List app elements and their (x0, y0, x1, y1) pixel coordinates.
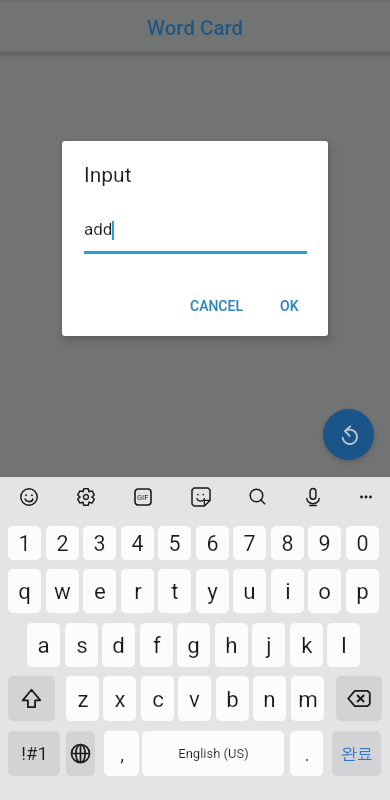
button[interactable]: x (103, 676, 136, 721)
staticText: v (189, 686, 200, 712)
button[interactable]: u (233, 569, 266, 613)
button[interactable]: t (158, 569, 191, 613)
staticText: n (263, 686, 276, 712)
staticText: !#1 (21, 743, 48, 765)
button[interactable]: 완료 (332, 731, 381, 776)
staticText: . (304, 743, 310, 765)
staticText: u (243, 578, 256, 604)
button[interactable]: v (178, 676, 211, 721)
button[interactable]: Emoji (9, 477, 49, 517)
button[interactable]: w (46, 569, 79, 613)
button[interactable]: . (290, 731, 323, 776)
staticText: p (356, 578, 369, 604)
button[interactable]: Shift (8, 676, 55, 721)
staticText: l (341, 632, 347, 658)
button[interactable]: English (US) (142, 731, 284, 776)
button[interactable]: 0 (346, 526, 379, 560)
staticText: z (77, 686, 89, 712)
button[interactable]: Reset (323, 409, 374, 460)
staticText: k (301, 632, 313, 658)
button[interactable]: s (65, 623, 98, 667)
staticText: i (285, 578, 291, 604)
staticText: w (54, 578, 71, 604)
staticText: CANCEL (190, 298, 243, 314)
staticText: 7 (243, 531, 256, 556)
button[interactable]: 8 (271, 526, 304, 560)
button[interactable]: k (290, 623, 323, 667)
staticText: s (76, 632, 88, 658)
button[interactable]: r (121, 569, 154, 613)
button[interactable]: Stickers (181, 477, 221, 517)
button[interactable]: OK (268, 292, 311, 320)
staticText: q (18, 578, 31, 604)
staticText: 완료 (341, 744, 373, 764)
button[interactable]: CANCEL (181, 292, 251, 320)
staticText: 4 (131, 531, 144, 556)
button[interactable]: y (196, 569, 229, 613)
staticText: r (134, 578, 142, 604)
button[interactable]: 5 (158, 526, 191, 560)
button[interactable]: b (216, 676, 249, 721)
staticText: x (114, 686, 126, 712)
button[interactable]: l (327, 623, 360, 667)
button[interactable]: a (27, 623, 60, 667)
button[interactable]: 4 (121, 526, 154, 560)
button[interactable]: n (253, 676, 286, 721)
button[interactable]: h (215, 623, 248, 667)
button[interactable]: Word Card (0, 0, 390, 55)
staticText: y (207, 578, 218, 604)
button[interactable]: 3 (83, 526, 116, 560)
staticText: h (225, 632, 238, 658)
staticText: c (152, 686, 164, 712)
button[interactable]: Search (238, 477, 278, 517)
staticText: o (318, 578, 331, 604)
button[interactable]: Voice input (293, 477, 333, 517)
button[interactable]: i (271, 569, 304, 613)
staticText: add (84, 219, 113, 239)
button[interactable]: p (346, 569, 379, 613)
button[interactable]: !#1 (8, 731, 60, 776)
button[interactable]: More options (346, 477, 386, 517)
staticText: , (120, 743, 124, 765)
staticText: 5 (168, 531, 181, 556)
button[interactable]: c (141, 676, 174, 721)
button[interactable]: o (308, 569, 341, 613)
staticText: GIF (137, 493, 149, 502)
staticText: 9 (318, 531, 331, 556)
staticText: 3 (93, 531, 106, 556)
staticText: 2 (56, 531, 69, 556)
staticText: English (US) (178, 746, 249, 761)
staticText: f (153, 632, 161, 658)
button[interactable]: d (102, 623, 135, 667)
staticText: 6 (206, 531, 219, 556)
staticText: t (171, 578, 179, 604)
staticText: d (112, 632, 125, 658)
staticText: Word Card (147, 16, 244, 40)
button[interactable]: j (252, 623, 285, 667)
button[interactable]: f (140, 623, 173, 667)
button[interactable]: z (66, 676, 99, 721)
staticText: 1 (18, 531, 31, 556)
button[interactable]: , (104, 731, 139, 776)
button[interactable]: q (8, 569, 41, 613)
staticText: b (226, 686, 239, 712)
staticText: 8 (281, 531, 294, 556)
button[interactable]: 7 (233, 526, 266, 560)
staticText: j (266, 632, 272, 658)
staticText: OK (280, 298, 299, 314)
button[interactable]: 9 (308, 526, 341, 560)
button[interactable]: GIF (123, 477, 163, 517)
button[interactable]: Change language (66, 731, 95, 776)
button[interactable]: 6 (196, 526, 229, 560)
button[interactable]: 1 (8, 526, 41, 560)
button[interactable]: Backspace (336, 676, 382, 721)
staticText: m (298, 686, 318, 712)
button[interactable]: m (291, 676, 324, 721)
staticText: a (37, 632, 50, 658)
button[interactable]: 2 (46, 526, 79, 560)
staticText: g (187, 632, 200, 658)
staticText: Input (84, 163, 132, 188)
button[interactable]: Settings (66, 477, 106, 517)
button[interactable]: g (177, 623, 210, 667)
button[interactable]: e (83, 569, 116, 613)
